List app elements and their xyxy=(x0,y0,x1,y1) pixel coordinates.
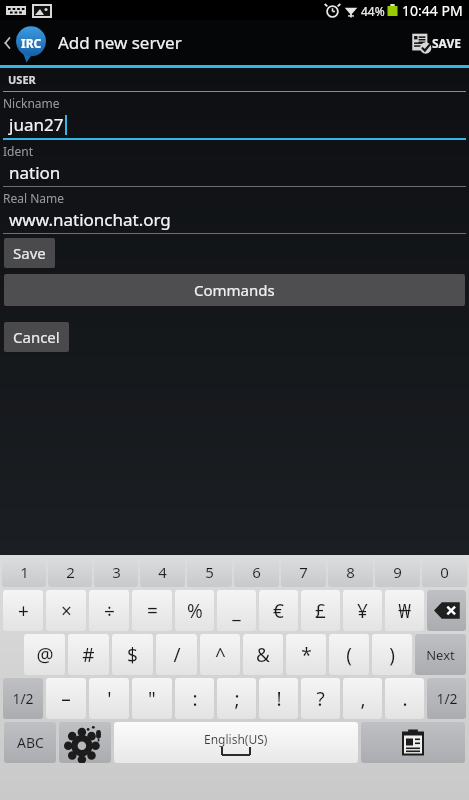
button[interactable]: Next xyxy=(415,634,466,675)
staticText: ? xyxy=(316,686,325,712)
staticText: % xyxy=(187,598,203,624)
staticText: English(US) xyxy=(204,731,268,747)
button[interactable]: ( xyxy=(329,634,369,675)
button[interactable]: _ xyxy=(217,590,256,631)
button[interactable]: ) xyxy=(372,634,412,675)
button[interactable]: ' xyxy=(89,678,129,719)
button[interactable]: Space xyxy=(114,722,358,763)
button[interactable]: " xyxy=(132,678,172,719)
button[interactable]: ABC xyxy=(4,722,56,763)
staticText: = xyxy=(147,598,158,624)
staticText: USER xyxy=(8,72,36,87)
staticText: / xyxy=(173,642,181,668)
button[interactable]: www.nationchat.org xyxy=(0,206,469,234)
staticText: " xyxy=(148,686,156,712)
staticText: 6 xyxy=(252,562,261,582)
button[interactable]: ! xyxy=(259,678,298,719)
staticText: $ xyxy=(127,642,138,668)
button[interactable]: 8 xyxy=(328,557,373,587)
button[interactable]: ÷ xyxy=(89,590,129,631)
staticText: ABC xyxy=(17,733,44,752)
button[interactable]: 0 xyxy=(422,557,467,587)
staticText: ÷ xyxy=(104,598,115,624)
button[interactable]: 1 xyxy=(2,557,46,587)
button[interactable]: £ xyxy=(301,590,340,631)
button[interactable]: + xyxy=(3,590,43,631)
staticText: Commands xyxy=(194,280,275,300)
button[interactable]: . xyxy=(385,678,424,719)
staticText: # xyxy=(82,642,95,668)
staticText: Ident xyxy=(3,143,33,159)
staticText: ¥ xyxy=(357,598,368,624)
button[interactable]: 7 xyxy=(281,557,326,587)
staticText: Nickname xyxy=(3,95,60,111)
button[interactable]: × xyxy=(46,590,86,631)
staticText: www.nationchat.org xyxy=(9,208,171,231)
staticText: ^ xyxy=(215,642,226,668)
staticText: juan27 xyxy=(9,113,64,136)
button[interactable]: Delete xyxy=(427,590,466,631)
staticText: Next xyxy=(426,646,455,664)
button[interactable]: & xyxy=(243,634,283,675)
button[interactable]: Save xyxy=(403,20,469,65)
button[interactable]: 1/2 xyxy=(3,678,43,719)
button[interactable]: Commands xyxy=(4,274,465,306)
button[interactable]: ₩ xyxy=(385,590,424,631)
staticText: IRC xyxy=(21,35,42,51)
button[interactable]: € xyxy=(259,590,298,631)
button[interactable]: nation xyxy=(0,159,469,187)
staticText: @ xyxy=(36,642,54,668)
staticText: 9 xyxy=(393,562,402,582)
staticText: 8 xyxy=(346,562,355,582)
button[interactable]: , xyxy=(343,678,382,719)
button[interactable]: # xyxy=(68,634,109,675)
staticText: 7 xyxy=(299,562,308,582)
button[interactable]: 4 xyxy=(140,557,185,587)
button[interactable]: 1/2 xyxy=(427,678,466,719)
button[interactable]: = xyxy=(132,590,172,631)
button[interactable]: juan27 xyxy=(0,111,469,140)
button[interactable]: / xyxy=(156,634,197,675)
staticText: ' xyxy=(107,686,112,712)
staticText: , xyxy=(360,686,366,712)
staticText: – xyxy=(61,686,71,712)
button[interactable]: * xyxy=(286,634,326,675)
staticText: _ xyxy=(232,598,241,624)
staticText: ; xyxy=(234,686,240,712)
button[interactable]: 9 xyxy=(375,557,420,587)
button[interactable]: ; xyxy=(217,678,256,719)
button[interactable]: : xyxy=(175,678,214,719)
button[interactable]: IRC xyxy=(0,26,52,60)
button[interactable]: 6 xyxy=(234,557,279,587)
button[interactable]: Clipboard xyxy=(361,722,465,763)
button[interactable]: – xyxy=(46,678,86,719)
button[interactable]: Cancel xyxy=(4,322,69,352)
staticText: 0 xyxy=(440,562,449,582)
button[interactable]: ^ xyxy=(200,634,240,675)
staticText: ₩ xyxy=(398,598,411,624)
staticText: Save xyxy=(13,243,46,263)
staticText: nation xyxy=(9,161,61,184)
button[interactable]: $ xyxy=(112,634,153,675)
staticText: × xyxy=(61,598,72,624)
button[interactable]: ¥ xyxy=(343,590,382,631)
staticText: Add new server xyxy=(58,31,182,54)
button[interactable]: % xyxy=(175,590,214,631)
staticText: 1/2 xyxy=(12,689,34,708)
staticText: 2 xyxy=(66,562,75,582)
staticText: 10:44 PM xyxy=(402,1,463,20)
button[interactable]: @ xyxy=(24,634,65,675)
staticText: . xyxy=(402,686,408,712)
staticText: + xyxy=(18,598,29,624)
staticText: * xyxy=(301,642,312,668)
button[interactable]: 3 xyxy=(94,557,138,587)
button[interactable]: 5 xyxy=(187,557,232,587)
staticText: & xyxy=(256,642,270,668)
staticText: ( xyxy=(346,642,352,668)
staticText: 1/2 xyxy=(436,689,458,708)
button[interactable]: Keyboard settings xyxy=(59,722,111,763)
staticText: £ xyxy=(315,598,326,624)
button[interactable]: ? xyxy=(301,678,340,719)
button[interactable]: Save xyxy=(4,238,55,268)
button[interactable]: 2 xyxy=(48,557,92,587)
